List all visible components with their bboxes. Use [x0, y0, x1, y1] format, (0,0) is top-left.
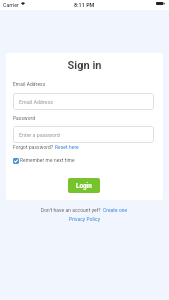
- staticText: 8:11 PM: [74, 2, 95, 8]
- staticText: Forgot password?: [13, 145, 55, 151]
- button[interactable]: Reset here: [55, 145, 79, 151]
- staticText: Login: [76, 182, 92, 189]
- staticText: Email Address: [19, 99, 53, 105]
- button[interactable]: Login: [68, 178, 100, 193]
- button[interactable]: Remember me next time: [13, 158, 75, 164]
- staticText: Sign in: [0, 59, 169, 72]
- button[interactable]: Privacy Policy: [0, 217, 169, 223]
- staticText: Enter a password: [19, 132, 60, 138]
- staticText: Password: [13, 116, 36, 122]
- staticText: Carrier: [3, 2, 19, 8]
- button[interactable]: Create one: [103, 208, 128, 214]
- staticText: Email Address: [13, 82, 46, 88]
- button[interactable]: Enter a password: [13, 126, 154, 143]
- staticText: Don't have an account yet?: [41, 208, 103, 214]
- other: Battery: [156, 2, 165, 5]
- staticText: Remember me next time: [20, 158, 75, 164]
- other: Wi-Fi: [21, 2, 25, 5]
- button[interactable]: Email Address: [13, 93, 154, 110]
